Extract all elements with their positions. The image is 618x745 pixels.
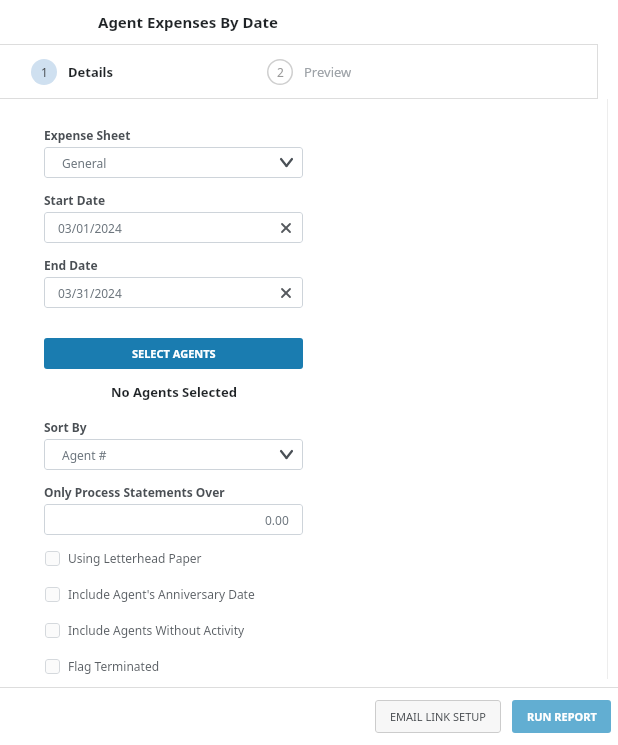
button[interactable]: SELECT AGENTS (44, 338, 303, 369)
button[interactable]: Clear date (279, 221, 293, 235)
button[interactable]: Include Agent's Anniversary Date (44, 584, 255, 604)
button[interactable]: Agent # (44, 439, 303, 470)
staticText: 0.00 (265, 512, 289, 528)
staticText: General (62, 155, 107, 171)
staticText: Sort By (44, 419, 87, 435)
staticText: Include Agent's Anniversary Date (68, 586, 255, 602)
button[interactable]: 2 (267, 59, 352, 85)
staticText: Only Process Statements Over (44, 484, 225, 500)
staticText: EMAIL LINK SETUP (390, 709, 486, 724)
button[interactable]: Flag Terminated (44, 656, 160, 676)
button[interactable]: 03/31/2024 (44, 277, 303, 308)
button[interactable]: 1 (31, 59, 113, 85)
staticText: Details (68, 63, 113, 81)
button[interactable]: Include Agents Without Activity (44, 620, 245, 640)
staticText: Start Date (44, 192, 106, 208)
staticText: 03/01/2024 (58, 220, 122, 236)
button[interactable]: Clear date (279, 286, 293, 300)
staticText: Agent Expenses By Date (98, 12, 279, 32)
button[interactable]: RUN REPORT (512, 700, 611, 733)
staticText: 1 (41, 64, 48, 80)
staticText: Preview (304, 63, 352, 81)
staticText: SELECT AGENTS (132, 346, 216, 361)
staticText: Using Letterhead Paper (68, 550, 202, 566)
button[interactable]: 0.00 (44, 504, 303, 535)
staticText: 2 (277, 64, 284, 80)
staticText: RUN REPORT (527, 709, 597, 724)
staticText: No Agents Selected (111, 383, 237, 401)
button[interactable]: EMAIL LINK SETUP (375, 700, 501, 733)
staticText: End Date (44, 257, 98, 273)
staticText: Include Agents Without Activity (68, 622, 245, 638)
button[interactable]: 03/01/2024 (44, 212, 303, 243)
button[interactable]: Using Letterhead Paper (44, 548, 202, 568)
staticText: 03/31/2024 (58, 285, 122, 301)
staticText: Flag Terminated (68, 658, 160, 674)
button[interactable]: General (44, 147, 303, 178)
staticText: Agent # (62, 447, 107, 463)
staticText: Expense Sheet (44, 127, 131, 143)
